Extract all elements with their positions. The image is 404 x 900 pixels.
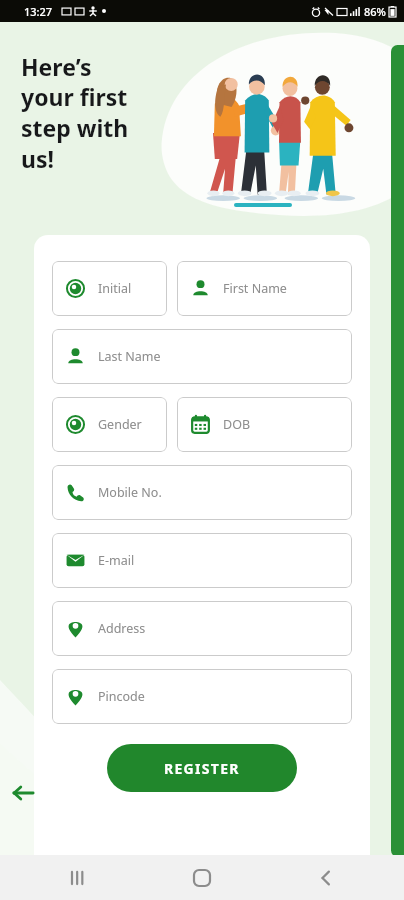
button[interactable]: First Name bbox=[177, 261, 352, 316]
staticText: Here’s your first step with us! bbox=[21, 51, 129, 175]
button[interactable]: Pincode bbox=[52, 669, 352, 724]
button[interactable]: Back bbox=[308, 860, 344, 896]
button[interactable]: Back bbox=[6, 776, 40, 810]
staticText: Pincode bbox=[98, 688, 145, 705]
button[interactable]: DOB bbox=[177, 397, 352, 452]
button[interactable]: Address bbox=[52, 601, 352, 656]
staticText: Initial bbox=[98, 280, 132, 297]
staticText: Gender bbox=[98, 416, 142, 433]
staticText: DOB bbox=[223, 416, 251, 433]
staticText: Address bbox=[98, 620, 146, 637]
staticText: Last Name bbox=[98, 348, 161, 365]
button[interactable]: Home bbox=[184, 860, 220, 896]
staticText: 86% bbox=[364, 4, 386, 19]
button[interactable]: Last Name bbox=[52, 329, 352, 384]
button[interactable]: Mobile No. bbox=[52, 465, 352, 520]
button[interactable]: E-mail bbox=[52, 533, 352, 588]
staticText: First Name bbox=[223, 280, 287, 297]
staticText: E-mail bbox=[98, 552, 135, 569]
button[interactable]: Recent apps bbox=[60, 860, 96, 896]
button[interactable]: Initial bbox=[52, 261, 167, 316]
button[interactable]: Gender bbox=[52, 397, 167, 452]
staticText: 13:27 bbox=[24, 4, 53, 19]
staticText: REGISTER bbox=[164, 759, 240, 778]
staticText: Mobile No. bbox=[98, 484, 162, 501]
button[interactable]: REGISTER bbox=[107, 744, 297, 792]
